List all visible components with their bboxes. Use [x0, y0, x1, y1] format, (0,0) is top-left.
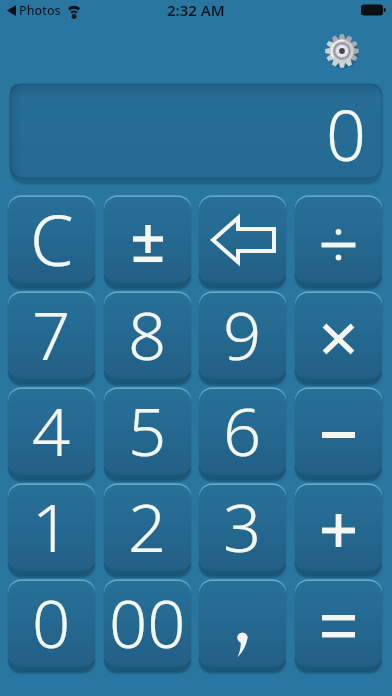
button[interactable]: [104, 197, 191, 283]
button[interactable]: 7: [8, 293, 95, 379]
button[interactable]: 4: [8, 389, 95, 475]
button[interactable]: [295, 581, 382, 667]
button[interactable]: 00: [104, 581, 191, 667]
button[interactable]: [295, 197, 382, 283]
button[interactable]: 2: [104, 485, 191, 571]
button[interactable]: 1: [8, 485, 95, 571]
staticText: 2:32 AM: [167, 0, 225, 20]
button[interactable]: [295, 293, 382, 379]
button[interactable]: [295, 389, 382, 475]
button[interactable]: 5: [104, 389, 191, 475]
staticText: 0: [326, 86, 366, 180]
staticText: 4: [32, 384, 71, 470]
staticText: 8: [128, 288, 167, 374]
button[interactable]: 3: [199, 485, 286, 571]
button[interactable]: [322, 31, 362, 71]
staticText: Photos: [19, 2, 61, 19]
button[interactable]: 8: [104, 293, 191, 379]
staticText: 1: [32, 480, 71, 566]
staticText: 6: [223, 384, 262, 470]
button[interactable]: 6: [199, 389, 286, 475]
staticText: 3: [223, 480, 262, 566]
staticText: C: [30, 191, 74, 277]
staticText: 0: [32, 576, 71, 662]
button[interactable]: 0: [8, 581, 95, 667]
staticText: 7: [32, 288, 71, 374]
button[interactable]: [199, 581, 286, 667]
button[interactable]: [295, 485, 382, 571]
staticText: 9: [223, 288, 262, 374]
button[interactable]: C: [8, 197, 95, 283]
staticText: 2: [128, 480, 167, 566]
staticText: 00: [109, 576, 186, 662]
button[interactable]: [199, 197, 286, 283]
button[interactable]: 9: [199, 293, 286, 379]
staticText: 5: [128, 384, 167, 470]
